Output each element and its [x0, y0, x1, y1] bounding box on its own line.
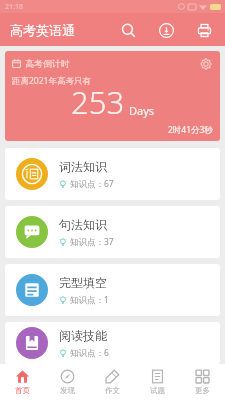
staticText: 阅读技能	[59, 328, 107, 343]
button[interactable]: Print	[192, 18, 216, 42]
staticText: 词法知识	[59, 159, 107, 174]
staticText: 完型填空	[59, 275, 107, 290]
staticText: 21:18	[5, 2, 23, 12]
staticText: 句法知识	[59, 217, 107, 232]
staticText: 作文	[105, 386, 120, 395]
staticText: 更多	[195, 386, 210, 395]
staticText: 试题	[150, 386, 165, 395]
button[interactable]: Download	[154, 18, 178, 42]
staticText: 距离2021年高考只有	[12, 75, 91, 87]
staticText: 高考倒计时	[25, 58, 70, 69]
staticText: 知识点：1	[70, 294, 109, 306]
staticText: 知识点：67	[70, 178, 114, 190]
button[interactable]: 阅读技能	[5, 322, 220, 364]
button[interactable]: 作文	[90, 364, 135, 400]
button[interactable]: 句法知识	[5, 206, 220, 258]
staticText: 2时41分3秒	[168, 124, 213, 136]
button[interactable]: 更多	[180, 364, 225, 400]
staticText: 知识点：37	[70, 236, 114, 248]
button[interactable]: 完型填空	[5, 264, 220, 316]
staticText: 发现	[60, 386, 75, 395]
button[interactable]: 首页	[0, 364, 45, 400]
staticText: 高考英语通	[10, 22, 75, 38]
staticText: 知识点：6	[70, 347, 109, 359]
staticText: Days	[129, 103, 155, 118]
button[interactable]: Settings	[197, 55, 215, 73]
button[interactable]: Search	[116, 18, 140, 42]
button[interactable]: 试题	[135, 364, 180, 400]
button[interactable]: 高考倒计时	[5, 51, 220, 141]
button[interactable]: 发现	[45, 364, 90, 400]
staticText: 首页	[15, 386, 30, 395]
button[interactable]: 词法知识	[5, 148, 220, 200]
staticText: 253	[71, 81, 125, 123]
